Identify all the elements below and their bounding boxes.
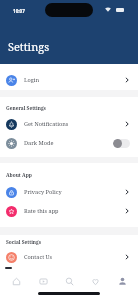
button[interactable]: Rate this app xyxy=(0,202,138,220)
button[interactable]: Home xyxy=(6,271,26,291)
staticText: General Settings xyxy=(6,105,46,112)
button[interactable]: Privacy Policy xyxy=(0,183,138,201)
staticText: Get Notifications xyxy=(24,120,69,128)
staticText: Social Settings xyxy=(6,239,42,246)
staticText: About App xyxy=(6,172,32,179)
staticText: Settings xyxy=(8,39,50,54)
staticText: Login xyxy=(24,76,40,84)
staticText: Privacy Policy xyxy=(24,188,62,196)
staticText: Rate this app xyxy=(24,207,59,215)
button[interactable]: Favorites xyxy=(85,271,105,291)
button[interactable]: Contact Us xyxy=(0,248,138,266)
staticText: Dark Mode xyxy=(24,139,54,147)
button[interactable]: Dark Mode xyxy=(0,134,138,152)
button[interactable]: Get Notifications xyxy=(0,115,138,133)
staticText: Contact Us xyxy=(24,253,53,261)
staticText: 10:07 xyxy=(13,8,25,14)
button[interactable]: Profile xyxy=(112,271,132,291)
button[interactable]: Search xyxy=(59,271,79,291)
button[interactable]: Login xyxy=(0,71,138,89)
button[interactable]: Videos xyxy=(33,271,53,291)
